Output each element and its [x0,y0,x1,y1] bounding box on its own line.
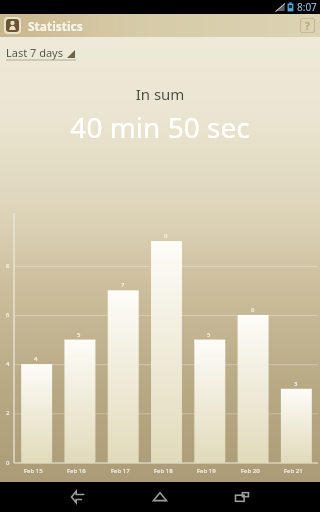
staticText: 8 [6,262,10,270]
staticText: 7 [121,281,125,289]
staticText: Feb 21 [284,467,303,475]
button[interactable]: Help [300,18,315,33]
staticText: ? [305,19,310,33]
staticText: 8:07 [297,0,317,14]
staticText: 5 [77,331,81,339]
button[interactable]: Home [140,482,180,512]
button[interactable]: Last 7 days [6,43,76,61]
staticText: Last 7 days [6,45,64,60]
button[interactable]: Recents [222,482,262,512]
staticText: 5 [207,331,211,339]
staticText: 6 [251,306,255,314]
staticText: 4 [34,355,38,363]
staticText: 0 [6,459,10,467]
button[interactable]: Back [58,482,98,512]
staticText: Feb 18 [154,467,173,475]
staticText: In sum [0,84,320,104]
button[interactable]: App icon [6,19,19,32]
staticText: Feb 20 [241,467,260,475]
staticText: 6 [6,311,10,319]
staticText: 40 min 50 sec [0,108,320,146]
staticText: Feb 19 [197,467,216,475]
staticText: 2 [6,409,10,417]
staticText: Feb 17 [111,467,130,475]
staticText: Feb 16 [67,467,86,475]
staticText: 3 [294,380,298,388]
staticText: Feb 15 [24,467,43,475]
staticText: Statistics [28,18,83,34]
staticText: 9 [164,232,168,240]
staticText: 4 [6,360,10,368]
